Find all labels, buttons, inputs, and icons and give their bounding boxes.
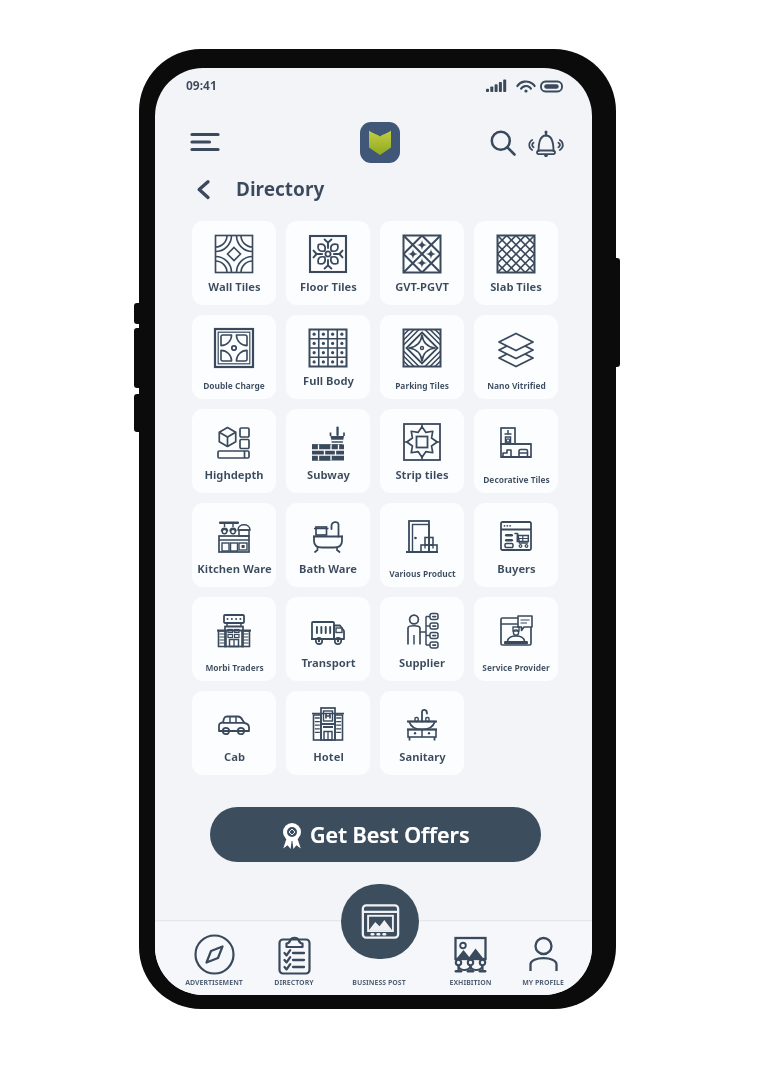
staticText: MY PROFILE [522, 978, 564, 988]
staticText: GVT-PGVT [395, 279, 449, 294]
staticText: Strip tiles [395, 467, 449, 482]
staticText: Bath Ware [299, 561, 357, 576]
staticText: DIRECTORY [274, 978, 314, 988]
button[interactable]: Various Product [380, 503, 464, 587]
staticText: BUSINESS POST [352, 978, 406, 988]
button[interactable]: Notifications [522, 120, 570, 168]
button[interactable]: Menu [177, 114, 233, 170]
staticText: Hotel [313, 749, 344, 764]
staticText: Get Best Offers [310, 820, 470, 849]
button[interactable]: ADVERTISEMENT [173, 920, 255, 995]
button[interactable]: Sanitary [380, 691, 464, 775]
button[interactable]: Parking Tiles [380, 315, 464, 399]
button[interactable]: EXHIBITION [429, 920, 511, 995]
button[interactable]: Full Body [286, 315, 370, 399]
button[interactable]: Search [480, 120, 528, 168]
button[interactable]: Transport [286, 597, 370, 681]
staticText: Floor Tiles [300, 279, 357, 294]
staticText: Transport [301, 655, 356, 670]
button[interactable]: Wall Tiles [192, 221, 276, 305]
staticText: Highdepth [204, 467, 264, 482]
button[interactable]: GVT-PGVT [380, 221, 464, 305]
button[interactable]: Back [188, 174, 218, 204]
button[interactable]: Get Best Offers [210, 807, 541, 862]
staticText: Morbi Traders [205, 662, 264, 673]
staticText: ADVERTISEMENT [185, 978, 243, 988]
button[interactable]: Highdepth [192, 409, 276, 493]
button[interactable]: Nano Vitrified [474, 315, 558, 399]
button[interactable]: App logo [360, 122, 400, 163]
staticText: Double Charge [203, 380, 265, 391]
staticText: Directory [236, 176, 325, 202]
staticText: Parking Tiles [395, 380, 449, 391]
staticText: Wall Tiles [208, 279, 261, 294]
staticText: Buyers [497, 561, 536, 576]
staticText: Cab [224, 749, 245, 764]
button[interactable]: Cab [192, 691, 276, 775]
button[interactable]: Decorative Tiles [474, 409, 558, 493]
button[interactable]: Supplier [380, 597, 464, 681]
staticText: Sanitary [399, 749, 446, 764]
button[interactable]: DIRECTORY [253, 920, 335, 995]
button[interactable]: Bath Ware [286, 503, 370, 587]
staticText: Slab Tiles [490, 279, 542, 294]
button[interactable]: MY PROFILE [502, 920, 584, 995]
staticText: EXHIBITION [449, 978, 492, 988]
staticText: Subway [307, 467, 350, 482]
staticText: Supplier [399, 655, 445, 670]
button[interactable]: Subway [286, 409, 370, 493]
button[interactable]: Business Post [341, 884, 419, 959]
button[interactable]: Strip tiles [380, 409, 464, 493]
staticText: Service Provider [482, 662, 550, 673]
button[interactable]: Morbi Traders [192, 597, 276, 681]
staticText: 09:41 [186, 77, 217, 93]
staticText: Decorative Tiles [483, 474, 550, 485]
button[interactable]: Hotel [286, 691, 370, 775]
staticText: Nano Vitrified [487, 380, 546, 391]
staticText: Various Product [389, 568, 456, 579]
staticText: Full Body [303, 373, 354, 388]
button[interactable]: Floor Tiles [286, 221, 370, 305]
button[interactable]: Double Charge [192, 315, 276, 399]
staticText: Kitchen Ware [197, 561, 272, 576]
button[interactable]: BUSINESS POST [338, 920, 420, 995]
button[interactable]: Slab Tiles [474, 221, 558, 305]
button[interactable]: Kitchen Ware [192, 503, 276, 587]
button[interactable]: Buyers [474, 503, 558, 587]
button[interactable]: Service Provider [474, 597, 558, 681]
